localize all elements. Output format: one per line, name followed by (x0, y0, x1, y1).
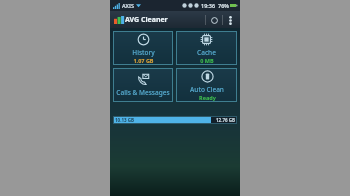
staticText: Auto Clean (190, 85, 224, 94)
staticText: History (132, 48, 155, 57)
staticText: 10.13 GB (115, 117, 134, 123)
staticText: 12.76 GB (216, 117, 235, 123)
staticText: 76% (218, 2, 229, 9)
button[interactable]: Refresh (206, 12, 222, 28)
button[interactable]: Calls & Messages (113, 68, 173, 102)
staticText: Cache (197, 48, 216, 57)
button[interactable]: Cache (176, 31, 237, 65)
button[interactable]: History (113, 31, 173, 65)
staticText: 0 MB (200, 57, 214, 64)
staticText: Calls & Messages (116, 88, 170, 97)
staticText: Ready (199, 94, 216, 101)
staticText: 1.07 GB (133, 57, 154, 64)
staticText: 19:36 (201, 2, 216, 9)
button[interactable]: 10.13 GB (113, 116, 237, 124)
staticText: AVG Cleaner (125, 15, 168, 25)
button[interactable]: Auto Clean (176, 68, 237, 102)
button[interactable]: More options (223, 13, 237, 27)
staticText: AXIS (122, 2, 134, 9)
